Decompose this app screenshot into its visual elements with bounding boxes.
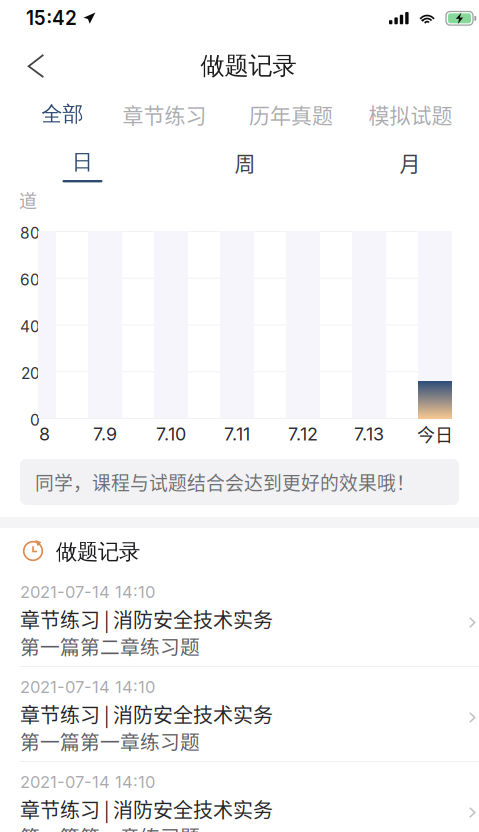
staticText: 60 xyxy=(20,270,40,289)
button[interactable]: 章节练习 xyxy=(114,96,214,132)
staticText: 7.12 xyxy=(288,423,318,445)
staticText: 0 xyxy=(30,411,40,429)
staticText: 7.9 xyxy=(93,423,117,445)
staticText: 章节练习 | 消防安全技术实务 xyxy=(20,604,273,633)
button[interactable]: 日 xyxy=(37,149,127,193)
staticText: 做题记录 xyxy=(200,51,296,81)
staticText: 2021-07-14 14:10 xyxy=(20,582,155,602)
staticText: 7.11 xyxy=(224,423,250,445)
staticText: 全部 xyxy=(41,101,83,127)
staticText: 月 xyxy=(399,147,420,177)
staticText: 章节练习 | 消防安全技术实务 xyxy=(20,699,273,728)
button[interactable]: Back xyxy=(8,41,64,91)
button[interactable]: 2021-07-14 14:10 xyxy=(0,578,479,673)
button[interactable]: 2021-07-14 14:10 xyxy=(0,768,479,832)
staticText: 2021-07-14 14:10 xyxy=(20,677,155,697)
button[interactable]: 模拟试题 xyxy=(360,96,460,132)
button[interactable]: 历年真题 xyxy=(241,96,341,132)
staticText: 同学，课程与试题结合会达到更好的效果哦！ xyxy=(35,468,415,496)
staticText: 章节练习 | 消防安全技术实务 xyxy=(20,794,273,823)
staticText: 模拟试题 xyxy=(368,99,452,129)
staticText: 做题记录 xyxy=(56,539,140,565)
button[interactable]: 周 xyxy=(200,149,290,193)
staticText: 40 xyxy=(20,317,40,336)
staticText: 日 xyxy=(72,149,93,175)
staticText: 章节练习 xyxy=(122,99,206,129)
staticText: 7.13 xyxy=(354,423,384,445)
staticText: 8 xyxy=(39,423,50,445)
button[interactable]: 2021-07-14 14:10 xyxy=(0,673,479,768)
staticText: 2021-07-14 14:10 xyxy=(20,772,155,792)
staticText: 历年真题 xyxy=(249,99,333,129)
button[interactable]: 月 xyxy=(365,149,455,193)
staticText: 第一篇第二章练习题 xyxy=(20,632,200,660)
button[interactable]: 全部 xyxy=(12,96,112,132)
staticText: 周 xyxy=(234,147,255,177)
staticText: 第一篇第一章练习题 xyxy=(20,727,200,755)
staticText: 第一篇第一章练习题 xyxy=(20,822,200,832)
staticText: 20 xyxy=(21,364,40,383)
staticText: 15:42 xyxy=(26,6,77,29)
staticText: 7.10 xyxy=(156,423,186,445)
staticText: 道 xyxy=(19,187,37,213)
staticText: 80 xyxy=(20,224,40,242)
staticText: 今日 xyxy=(417,421,453,447)
